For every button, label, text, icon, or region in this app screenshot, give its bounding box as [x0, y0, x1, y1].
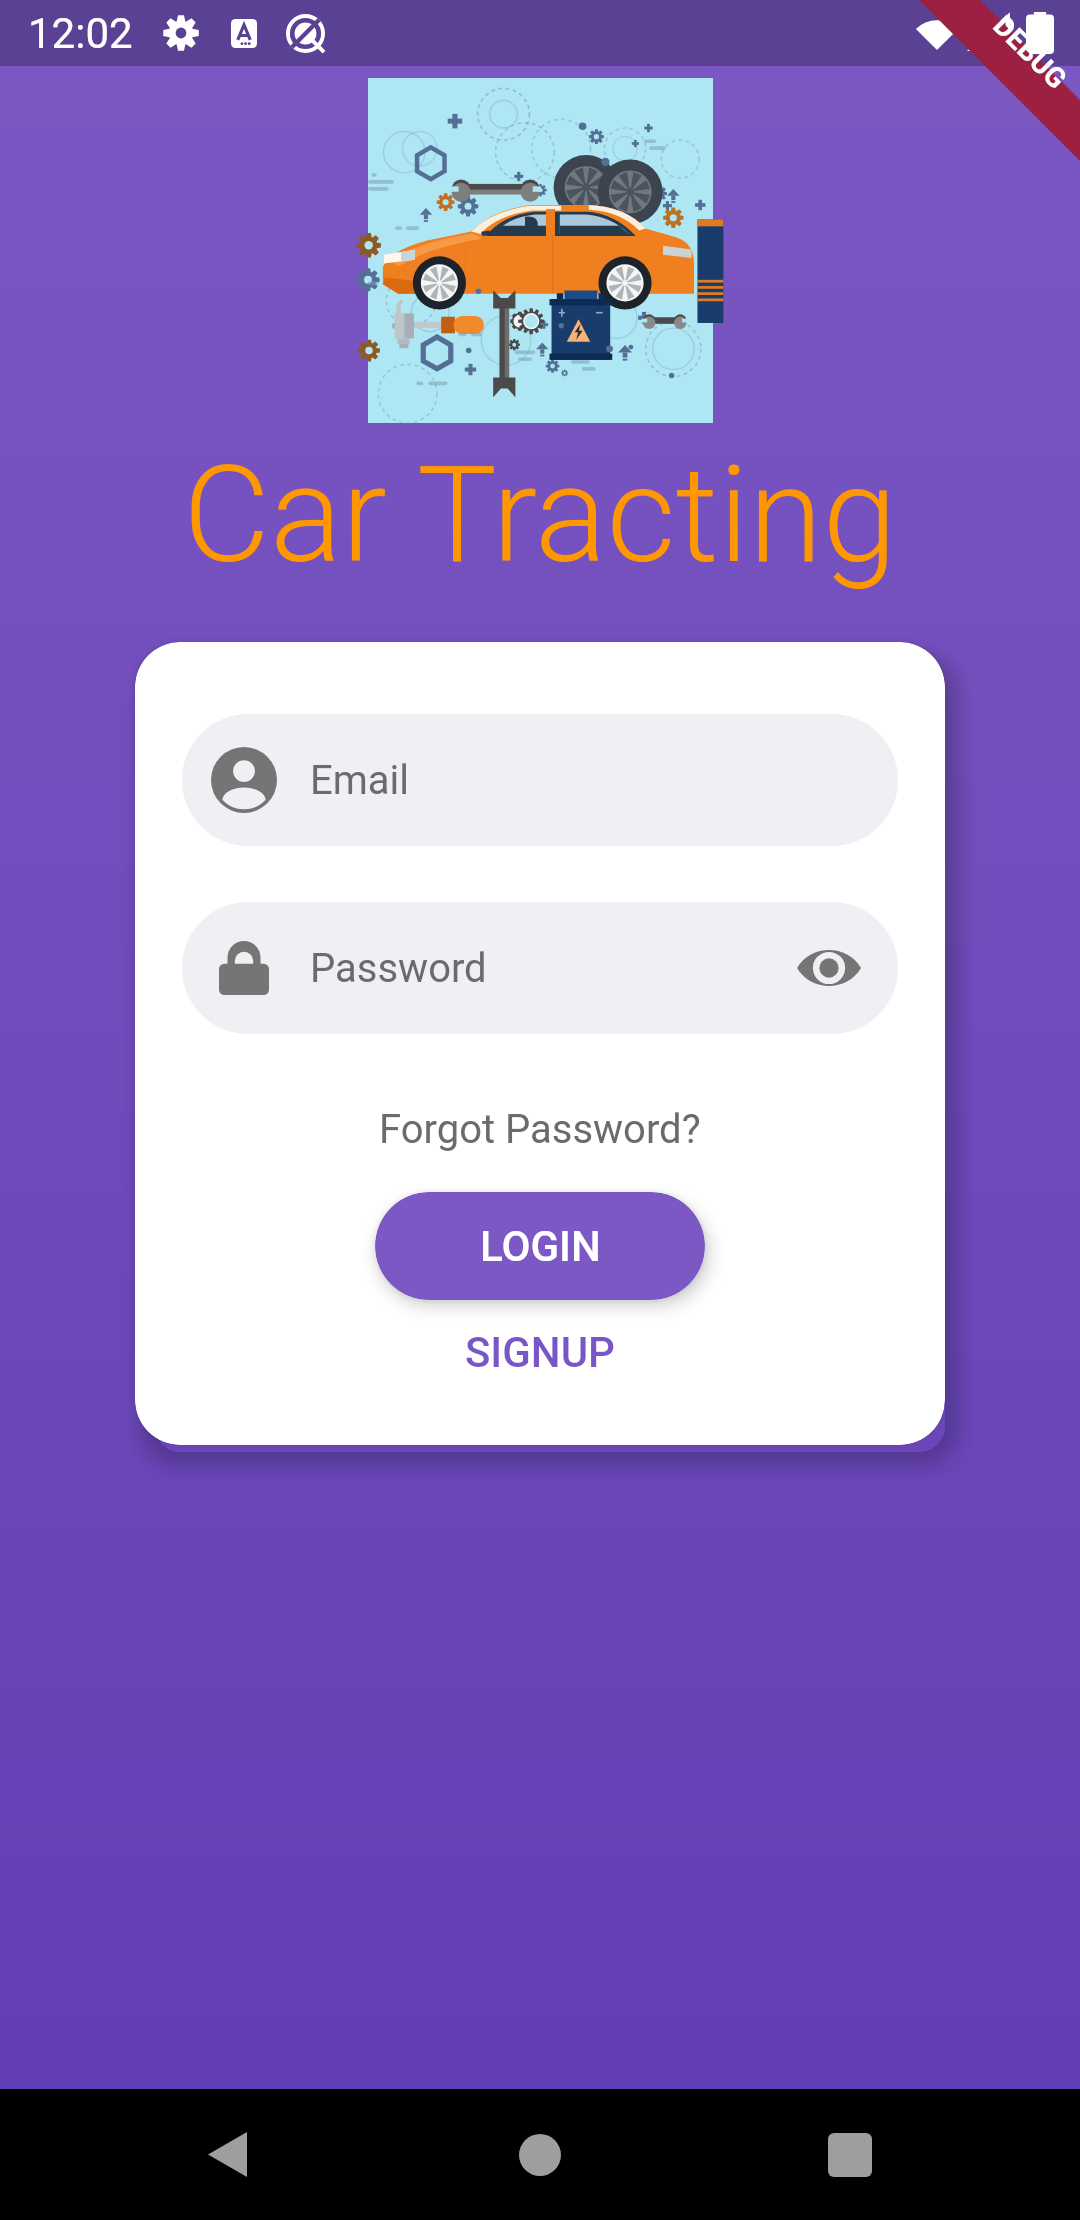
- button[interactable]: Password: [182, 902, 898, 1034]
- staticText: SIGNUP: [465, 1328, 615, 1377]
- staticText: 12:02: [28, 9, 133, 58]
- button[interactable]: Recent apps: [795, 2089, 905, 2220]
- staticText: LOGIN: [480, 1222, 601, 1271]
- staticText: Forgot Password?: [379, 1106, 701, 1153]
- button[interactable]: SIGNUP: [439, 1318, 641, 1387]
- button[interactable]: Forgot Password?: [359, 1098, 721, 1161]
- button[interactable]: Show password: [796, 935, 862, 1001]
- button[interactable]: LOGIN: [375, 1192, 705, 1300]
- staticText: DEBUG: [986, 9, 1073, 96]
- staticText: Car Tracting: [183, 437, 897, 594]
- staticText: Password: [310, 945, 487, 992]
- staticText: Email: [310, 757, 410, 804]
- button[interactable]: Back: [172, 2089, 282, 2220]
- button[interactable]: Email: [182, 714, 898, 846]
- button[interactable]: Home: [485, 2089, 595, 2220]
